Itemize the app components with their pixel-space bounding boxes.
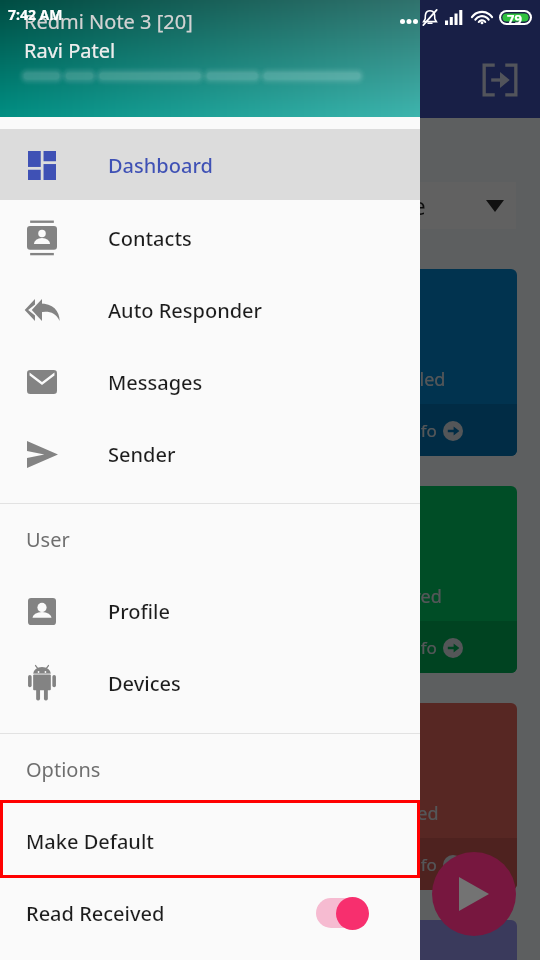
button[interactable]: Total Mails Delivered (0, 486, 517, 673)
staticText: Messages (108, 369, 203, 396)
staticText: Make Default (26, 828, 154, 855)
staticText: Mail Scheduler (80, 63, 264, 98)
staticText: Redmi Note 3 [20] (24, 8, 193, 35)
staticText: More Info (358, 853, 437, 876)
button[interactable]: Auto Responder (0, 274, 420, 346)
staticText: Auto Responder (108, 297, 263, 324)
staticText: Dashboard (108, 152, 213, 179)
button[interactable]: Contacts (0, 202, 420, 274)
button[interactable]: Profile (0, 575, 420, 647)
staticText: 7:42 AM (8, 5, 63, 24)
staticText: 79 (507, 10, 522, 25)
button[interactable]: Dashboard (0, 129, 420, 201)
button[interactable]: Total Mails Scheduled (0, 269, 517, 456)
button[interactable]: Start scheduler (432, 852, 516, 936)
button[interactable]: Messages (0, 346, 420, 418)
button[interactable]: Make Default (0, 805, 420, 877)
button[interactable]: Read Received (0, 877, 420, 949)
staticText: Contacts (108, 225, 192, 252)
staticText: User (26, 526, 70, 553)
staticText: Profile (108, 598, 170, 625)
button[interactable]: Total Mails Opened (0, 920, 517, 960)
staticText: Total Mails Delivered (267, 584, 442, 609)
staticText: More Info (358, 636, 437, 659)
button[interactable]: All Time (326, 182, 516, 229)
staticText: Devices (108, 670, 181, 697)
staticText: Ravi Patel (24, 37, 116, 64)
button[interactable]: Total Mails Failed (0, 703, 517, 890)
staticText: Read Received (26, 900, 165, 927)
staticText: Options (26, 756, 101, 783)
button[interactable]: Devices (0, 647, 420, 719)
button[interactable]: Sender (0, 418, 420, 490)
staticText: Sender (108, 441, 176, 468)
staticText: Total Mails Scheduled (263, 367, 446, 392)
button[interactable]: Logout (472, 52, 528, 108)
staticText: More Info (358, 419, 437, 442)
staticText: All Time (340, 190, 426, 221)
staticText: Total Mails Failed (294, 801, 439, 826)
